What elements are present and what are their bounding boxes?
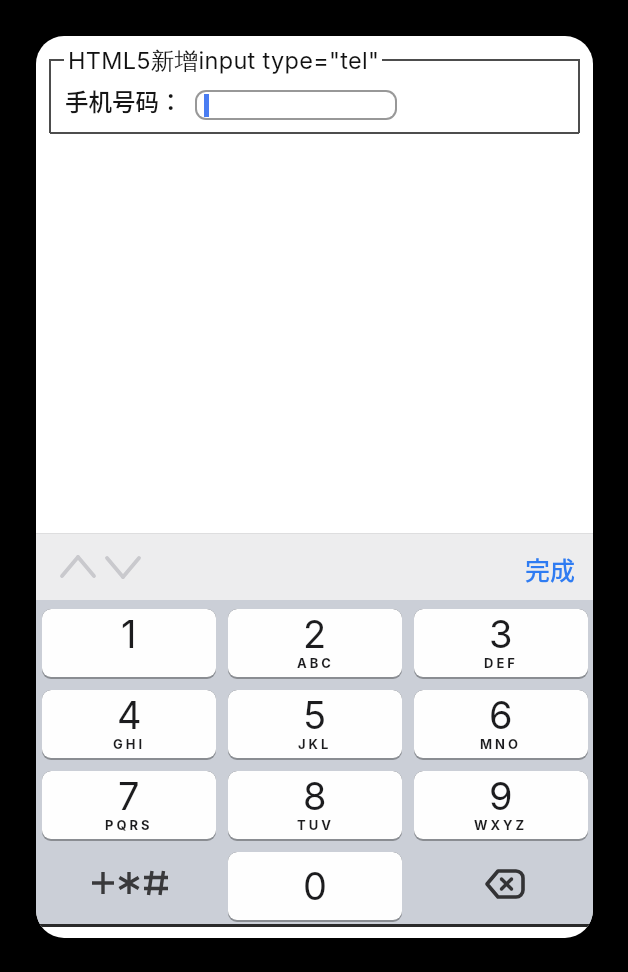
staticText: MNO — [480, 736, 522, 752]
button[interactable]: 9 — [414, 771, 588, 841]
staticText: GHI — [113, 736, 146, 752]
staticText: HTML5新增input type="tel" — [68, 46, 380, 76]
staticText: 4 — [117, 692, 142, 738]
button[interactable]: 7 — [42, 771, 216, 841]
staticText: 6 — [489, 692, 513, 738]
staticText: 1 — [121, 611, 137, 657]
staticText: 0 — [303, 863, 327, 909]
button[interactable]: 8 — [228, 771, 402, 841]
button[interactable]: 5 — [228, 690, 402, 760]
staticText: 9 — [489, 773, 513, 819]
button[interactable] — [414, 852, 588, 922]
staticText: JKL — [298, 736, 332, 752]
button[interactable]: 1 — [42, 609, 216, 679]
staticText: 7 — [118, 773, 140, 819]
button[interactable] — [195, 90, 397, 120]
staticText: TUV — [297, 817, 334, 833]
button[interactable]: 3 — [414, 609, 588, 679]
staticText: 5 — [303, 692, 327, 738]
button[interactable]: 完成 — [525, 551, 576, 587]
staticText: 手机号码： — [65, 84, 183, 118]
button[interactable]: 4 — [42, 690, 216, 760]
staticText: 2 — [303, 611, 327, 657]
button[interactable]: 6 — [414, 690, 588, 760]
staticText: 完成 — [525, 551, 576, 587]
staticText: 8 — [303, 773, 327, 819]
staticText: 3 — [489, 611, 513, 657]
staticText: WXYZ — [474, 817, 528, 833]
staticText: PQRS — [105, 817, 153, 833]
staticText: ABC — [297, 655, 334, 671]
button[interactable]: 0 — [228, 852, 402, 922]
button[interactable] — [42, 852, 216, 922]
staticText: DEF — [484, 655, 518, 671]
button[interactable]: 2 — [228, 609, 402, 679]
